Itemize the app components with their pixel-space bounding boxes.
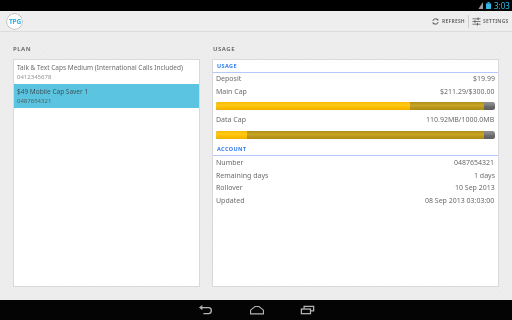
staticText: Talk & Text Caps Medium (International C… [17, 63, 183, 72]
button[interactable]: Talk & Text Caps Medium (International C… [13, 60, 200, 84]
staticText: Remaining days [216, 171, 269, 181]
staticText: USAGE [217, 62, 237, 69]
staticText: REFRESH [442, 18, 465, 25]
staticText: USAGE [213, 45, 236, 53]
staticText: 08 Sep 2013 03:03:00 [425, 196, 495, 206]
staticText: Updated [216, 196, 245, 206]
staticText: SETTINGS [483, 18, 509, 25]
button[interactable]: SETTINGS [469, 11, 512, 32]
staticText: 0487654321 [17, 97, 52, 105]
staticText: ACCOUNT [217, 145, 247, 152]
staticText: $211.29/$300.00 [440, 87, 495, 97]
staticText: TPG [9, 17, 21, 26]
button[interactable]: REFRESH [428, 11, 468, 32]
staticText: Main Cap [216, 87, 247, 97]
staticText: $49 Mobile Cap Saver 1 [17, 87, 89, 96]
button[interactable]: TPG home [6, 13, 23, 30]
staticText: 110.92MB/1000.0MB [426, 115, 495, 125]
staticText: 1 days [474, 171, 495, 181]
staticText: 0412345678 [17, 73, 52, 81]
staticText: PLAN [13, 45, 32, 53]
staticText: 3:03 [494, 0, 510, 11]
staticText: Deposit [216, 74, 242, 84]
button[interactable]: Back [180, 300, 231, 320]
staticText: Number [216, 158, 244, 168]
button[interactable]: Recent apps [282, 300, 333, 320]
button[interactable]: $49 Mobile Cap Saver 1 [13, 84, 200, 108]
staticText: Data Cap [216, 115, 246, 125]
staticText: 10 Sep 2013 [455, 183, 495, 193]
staticText: $19.99 [473, 74, 495, 84]
button[interactable]: Home [231, 300, 282, 320]
staticText: Rollover [216, 183, 243, 193]
staticText: 0487654321 [454, 158, 495, 168]
